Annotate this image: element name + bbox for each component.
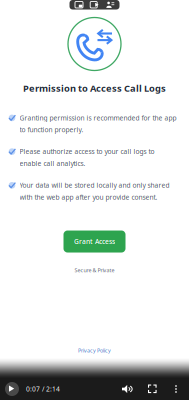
staticText: to function properly. [19,125,83,134]
button[interactable]: Mute [122,384,132,393]
button[interactable]: Grant Access [63,230,125,252]
button[interactable]: Play [4,381,20,397]
button[interactable]: Picture in picture [74,1,83,9]
button[interactable]: Privacy Policy [78,347,111,354]
staticText: with the web app after you provide conse… [19,193,157,202]
staticText: Privacy Policy [78,347,111,354]
staticText: Please authorize access to your call log… [19,147,154,156]
staticText: Grant Access [74,237,115,246]
staticText: Granting permission is recommended for t… [19,113,176,122]
staticText: Permission to Access Call Logs [23,82,166,94]
button[interactable]: More options [173,384,179,393]
staticText: enable call analytics. [19,159,85,168]
staticText: Secure & Private [74,266,114,274]
staticText: Your data will be stored locally and onl… [19,181,169,190]
staticText: 0:07 / 2:14 [26,385,60,393]
button[interactable]: Autoplay [105,1,114,9]
button[interactable]: Full screen [148,384,157,393]
button[interactable]: Miniplayer [90,1,99,9]
